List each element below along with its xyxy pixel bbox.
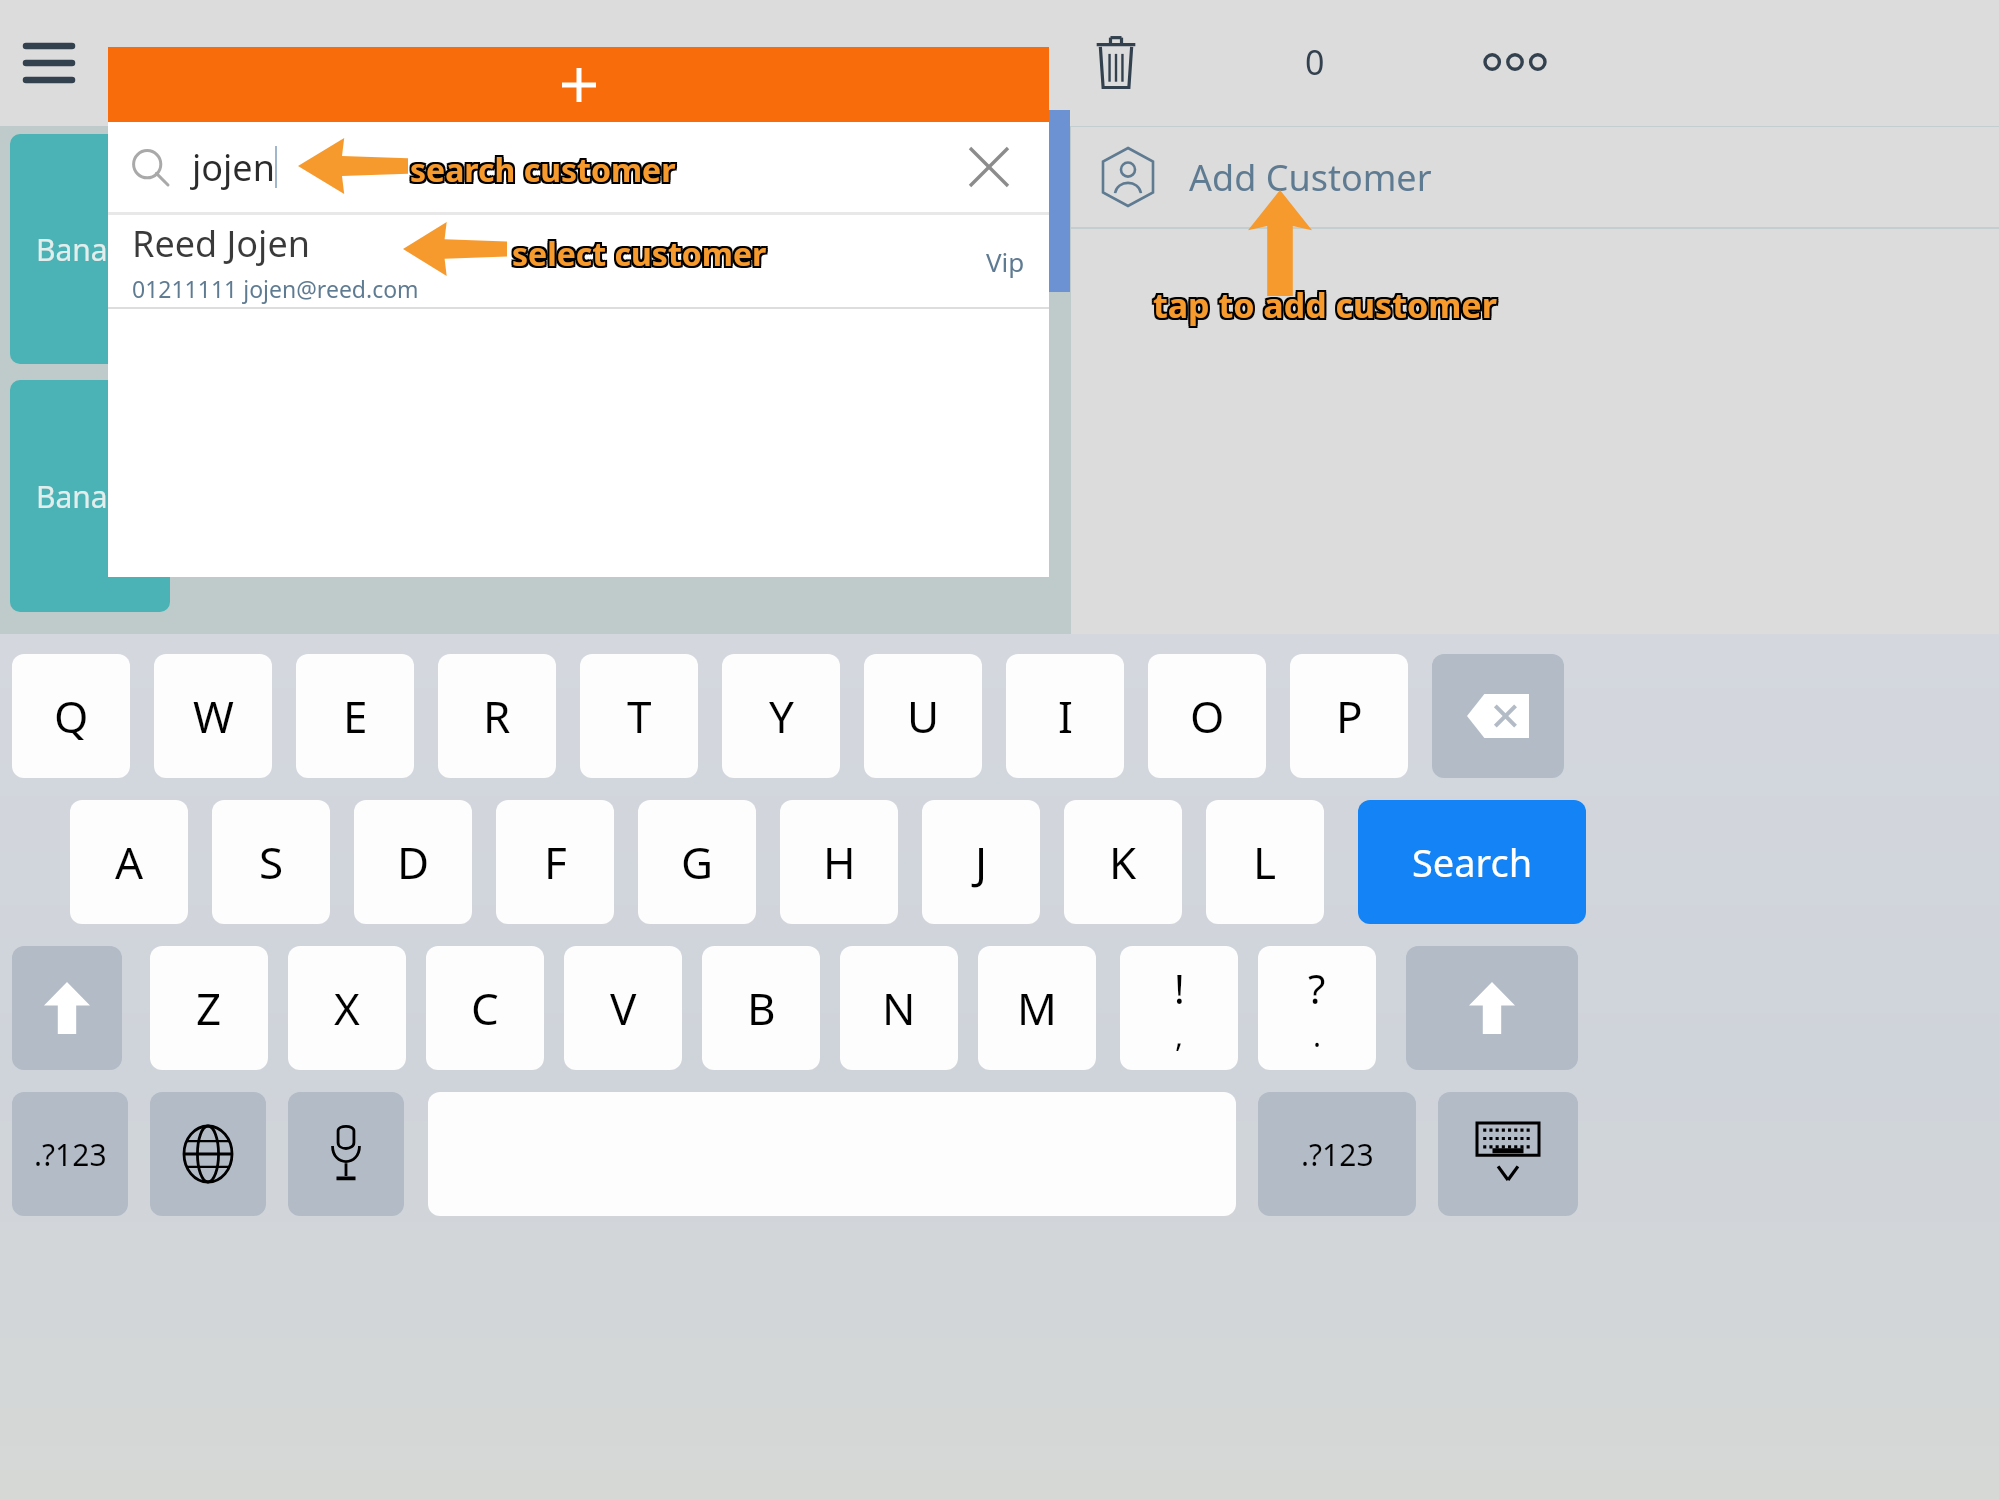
staticText: Add Customer <box>1189 153 1432 202</box>
staticText: V <box>610 978 637 1038</box>
button[interactable]: Delete <box>1076 22 1156 102</box>
staticText: tap to add customer <box>1153 280 1497 326</box>
staticText: H <box>823 832 856 892</box>
button[interactable]: Z <box>150 946 268 1070</box>
staticText: Search <box>1412 836 1533 888</box>
button[interactable]: C <box>426 946 544 1070</box>
staticText: search customer <box>410 146 676 190</box>
button[interactable]: K <box>1064 800 1182 924</box>
button[interactable]: jojen <box>108 122 1049 212</box>
button[interactable]: Q <box>12 654 130 778</box>
button[interactable]: Backspace <box>1432 654 1564 778</box>
staticText: tap to add customer <box>1151 284 1495 330</box>
button[interactable]: Shift <box>1406 946 1578 1070</box>
button[interactable]: .?123 <box>12 1092 128 1216</box>
button[interactable]: Add new customer <box>108 47 1049 122</box>
button[interactable]: D <box>354 800 472 924</box>
button[interactable]: E <box>296 654 414 778</box>
staticText: S <box>259 832 284 892</box>
staticText: select customer <box>512 232 767 276</box>
button[interactable]: G <box>638 800 756 924</box>
staticText: N <box>882 978 916 1038</box>
button[interactable]: F <box>496 800 614 924</box>
button[interactable]: 0 <box>1260 22 1370 102</box>
staticText: search customer <box>412 150 678 194</box>
staticText: Banana <box>36 476 144 517</box>
staticText: select customer <box>514 232 769 276</box>
staticText: D <box>397 832 430 892</box>
staticText: U <box>907 686 940 746</box>
button[interactable]: B <box>702 946 820 1070</box>
button[interactable]: U <box>864 654 982 778</box>
staticText: select customer <box>514 234 769 278</box>
button[interactable]: N <box>840 946 958 1070</box>
staticText: select customer <box>510 232 765 276</box>
button[interactable]: Voice input <box>288 1092 404 1216</box>
staticText: search customer <box>410 150 676 194</box>
staticText: .?123 <box>1301 1134 1374 1175</box>
button[interactable]: T <box>580 654 698 778</box>
staticText: 0 <box>1305 39 1325 85</box>
button[interactable]: Shift <box>12 946 122 1070</box>
staticText: select customer <box>510 230 765 274</box>
staticText: K <box>1109 832 1137 892</box>
staticText: search customer <box>410 148 676 192</box>
staticText: search customer <box>408 150 674 194</box>
button[interactable]: Hide keyboard <box>1438 1092 1578 1216</box>
staticText: C <box>471 978 499 1038</box>
button[interactable]: H <box>780 800 898 924</box>
button[interactable]: A <box>70 800 188 924</box>
button[interactable]: J <box>922 800 1040 924</box>
staticText: M <box>1017 978 1057 1038</box>
staticText: tap to add customer <box>1151 282 1495 328</box>
staticText: Q <box>54 686 89 746</box>
staticText: G <box>681 832 714 892</box>
staticText: search customer <box>408 146 674 190</box>
button[interactable]: Banana <box>10 380 170 612</box>
staticText: select customer <box>514 230 769 274</box>
staticText: ? <box>1308 961 1326 1015</box>
button[interactable]: R <box>438 654 556 778</box>
staticText: . <box>1313 1015 1322 1056</box>
button[interactable]: W <box>154 654 272 778</box>
button[interactable]: X <box>288 946 406 1070</box>
button[interactable]: O <box>1148 654 1266 778</box>
staticText: I <box>1058 686 1073 746</box>
button[interactable]: S <box>212 800 330 924</box>
staticText: Vip <box>986 244 1025 279</box>
button[interactable]: More options <box>1470 22 1560 102</box>
button[interactable]: I <box>1006 654 1124 778</box>
staticText: Y <box>769 686 794 746</box>
staticText: tap to add customer <box>1155 280 1499 326</box>
button[interactable]: Banana <box>10 134 170 364</box>
staticText: 01211111 jojen@reed.com <box>132 273 419 304</box>
button[interactable]: Y <box>722 654 840 778</box>
button[interactable]: Search <box>1358 800 1586 924</box>
staticText: search customer <box>412 148 678 192</box>
staticText: W <box>193 686 234 746</box>
staticText: X <box>334 978 360 1038</box>
button[interactable]: Reed Jojen <box>108 215 1049 307</box>
staticText: ! <box>1174 961 1185 1015</box>
button[interactable]: .?123 <box>1258 1092 1416 1216</box>
staticText: tap to add customer <box>1155 282 1499 328</box>
button[interactable]: V <box>564 946 682 1070</box>
button[interactable]: Menu <box>14 28 84 98</box>
button[interactable]: L <box>1206 800 1324 924</box>
staticText: tap to add customer <box>1153 284 1497 330</box>
button[interactable]: P <box>1290 654 1408 778</box>
button[interactable]: Change language <box>150 1092 266 1216</box>
staticText: tap to add customer <box>1151 280 1495 326</box>
staticText: Z <box>196 978 222 1038</box>
staticText: B <box>747 978 776 1038</box>
button[interactable]: M <box>978 946 1096 1070</box>
staticText: T <box>627 686 652 746</box>
button[interactable] <box>1046 110 1070 292</box>
staticText: A <box>115 832 144 892</box>
button[interactable]: ! <box>1120 946 1238 1070</box>
button[interactable]: ? <box>1258 946 1376 1070</box>
staticText: , <box>1175 1015 1184 1056</box>
button[interactable]: Add Customer <box>1071 127 1999 227</box>
button[interactable]: Clear <box>951 129 1027 205</box>
